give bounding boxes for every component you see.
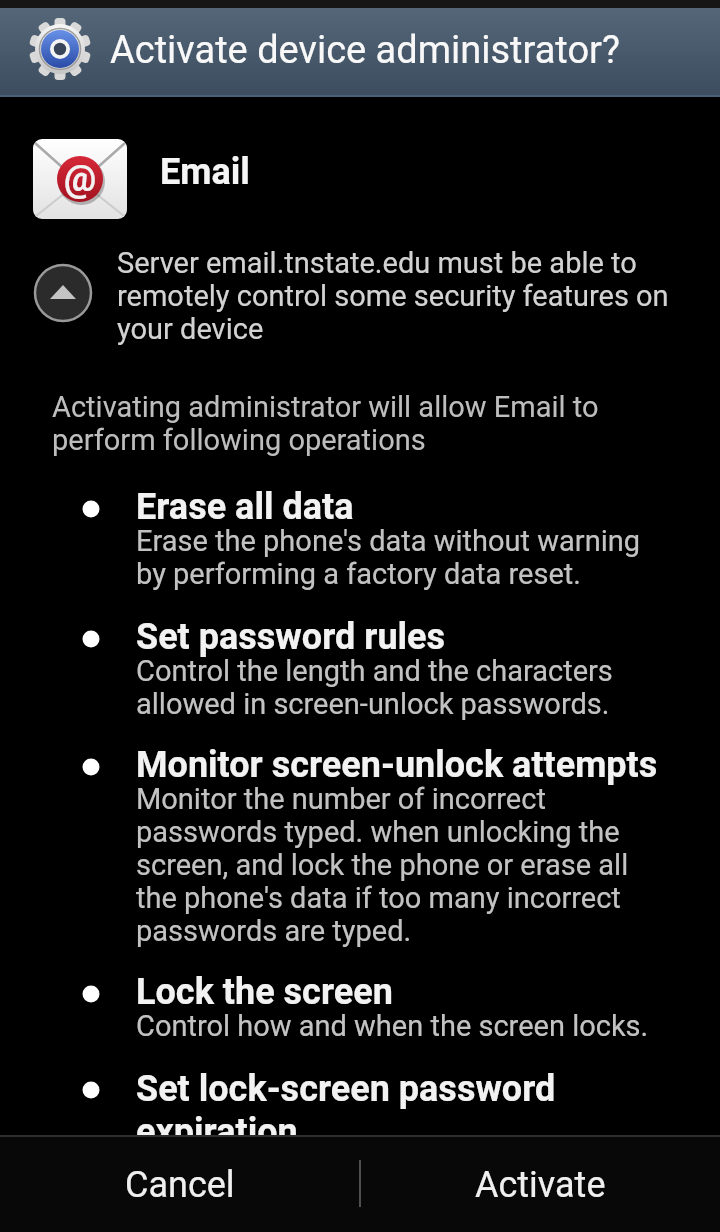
- staticText: Email: [160, 151, 250, 193]
- staticText: Set lock-screen password expiration: [136, 1067, 556, 1153]
- staticText: Control how and when the screen locks.: [136, 1010, 649, 1043]
- staticText: Set password rules: [136, 616, 446, 658]
- button[interactable]: Activate: [360, 1137, 720, 1232]
- staticText: Activate: [475, 1164, 606, 1206]
- button[interactable]: Cancel: [0, 1137, 360, 1232]
- button[interactable]: [33, 263, 93, 323]
- staticText: Cancel: [125, 1164, 235, 1206]
- staticText: Server email.tnstate.edu must be able to…: [117, 247, 669, 346]
- staticText: @: [64, 158, 97, 200]
- staticText: Control the length and the characters al…: [136, 655, 613, 721]
- staticText: Erase all data: [136, 486, 354, 528]
- staticText: Lock the screen: [136, 971, 393, 1013]
- staticText: Monitor screen-unlock attempts: [136, 744, 658, 786]
- staticText: Activating administrator will allow Emai…: [52, 391, 599, 457]
- staticText: Erase the phone's data without warning b…: [136, 525, 641, 591]
- staticText: Activate device administrator?: [110, 28, 620, 72]
- staticText: Monitor the number of incorrect password…: [136, 783, 629, 948]
